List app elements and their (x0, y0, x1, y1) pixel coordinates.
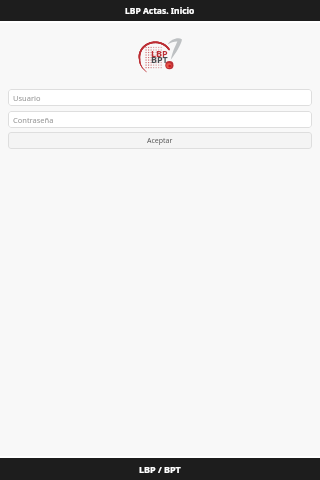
staticText: Contraseña (13, 115, 54, 125)
button[interactable]: Contraseña (8, 111, 312, 128)
other: LBP / BPT logo (136, 38, 186, 74)
staticText: LBP (151, 47, 168, 59)
button[interactable]: LBP / BPT (0, 458, 320, 480)
staticText: LBP / BPT (139, 463, 181, 475)
staticText: Usuario (13, 93, 41, 103)
staticText: Aceptar (147, 136, 173, 146)
button[interactable]: Usuario (8, 89, 312, 106)
staticText: BPT (151, 53, 168, 65)
button[interactable]: Aceptar (8, 132, 312, 149)
staticText: LBP Actas. Inicio (125, 5, 195, 17)
button[interactable]: LBP Actas. Inicio (0, 0, 320, 21)
